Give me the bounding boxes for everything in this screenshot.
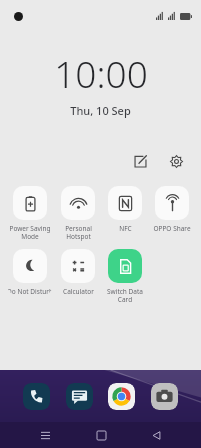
button[interactable]: Settings [163, 148, 189, 174]
staticText: Power Saving Mode [9, 224, 51, 241]
button[interactable]: OPPO Share [149, 186, 195, 233]
button[interactable]: Back [145, 424, 167, 446]
staticText: Thu, 10 Sep [70, 103, 131, 118]
button[interactable]: Do Not Disturb [7, 249, 53, 296]
button[interactable]: Camera [151, 383, 178, 410]
staticText: Switch Data Card [107, 287, 143, 304]
button[interactable]: Personal Hotspot [55, 186, 101, 241]
staticText: OPPO Share [153, 224, 191, 233]
button[interactable]: Brightness [11, 409, 154, 438]
staticText: Calculator [63, 287, 94, 296]
button[interactable]: Chrome [108, 383, 135, 410]
staticText: A [172, 417, 179, 431]
button[interactable]: Calculator [55, 249, 101, 296]
button[interactable]: Phone [23, 383, 50, 410]
staticText: Personal Hotspot [65, 224, 92, 241]
button[interactable]: Home [90, 424, 112, 446]
button[interactable]: NFC [102, 186, 148, 233]
staticText: 10:00 [54, 48, 148, 98]
staticText: Do Not Disturb [7, 287, 53, 296]
button[interactable]: Edit quick settings [127, 148, 153, 174]
button[interactable]: Power Saving Mode [7, 186, 53, 241]
button[interactable]: Recents [34, 424, 56, 446]
button[interactable]: Auto brightness [161, 409, 190, 438]
button[interactable]: Messages [66, 383, 93, 410]
button[interactable]: Switch Data Card [102, 249, 148, 304]
staticText: NFC [119, 224, 132, 233]
